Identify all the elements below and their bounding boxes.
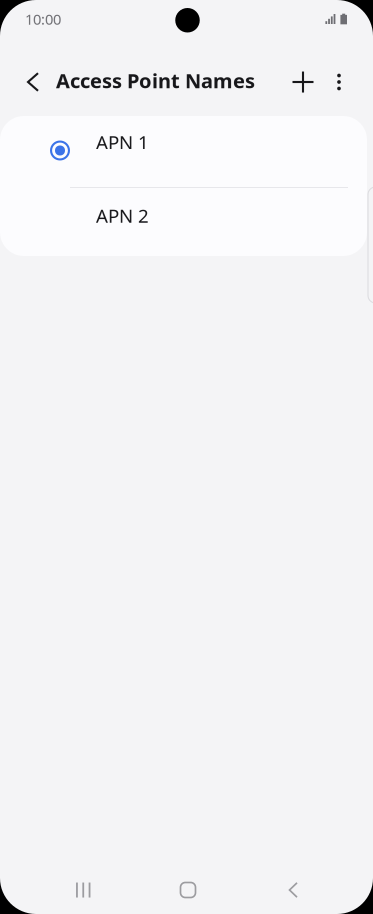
staticText: APN 2 — [96, 203, 149, 228]
button[interactable]: Back — [265, 867, 325, 913]
button[interactable]: More options — [324, 56, 354, 108]
button[interactable]: APN 2 — [0, 188, 367, 256]
button[interactable]: Add APN — [288, 56, 322, 108]
button[interactable]: Home — [156, 867, 216, 913]
staticText: 10:00 — [25, 9, 61, 29]
button[interactable]: Back — [16, 56, 52, 108]
button[interactable]: APN 1 — [0, 116, 367, 187]
staticText: APN 1 — [96, 129, 149, 154]
staticText: Access Point Names — [56, 67, 255, 94]
button[interactable]: Recent apps — [48, 867, 108, 913]
